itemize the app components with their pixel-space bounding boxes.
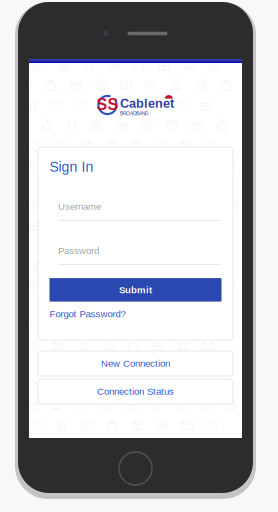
staticText: Forgot Password? [49,309,125,319]
staticText: Submit [119,284,152,295]
button[interactable]: Submit [49,278,221,302]
button[interactable]: New Connection [38,351,233,376]
staticText: Password [58,245,99,256]
staticText: New Connection [101,358,170,369]
staticText: SS [96,96,118,113]
staticText: Cablenet [120,96,174,110]
staticText: Connection Status [97,386,174,397]
staticText: Sign In [49,159,93,175]
button[interactable]: Forgot Password? [38,308,125,320]
staticText: Username [58,201,101,212]
staticText: BROADBAND [120,111,148,116]
button[interactable]: Connection Status [38,379,233,404]
